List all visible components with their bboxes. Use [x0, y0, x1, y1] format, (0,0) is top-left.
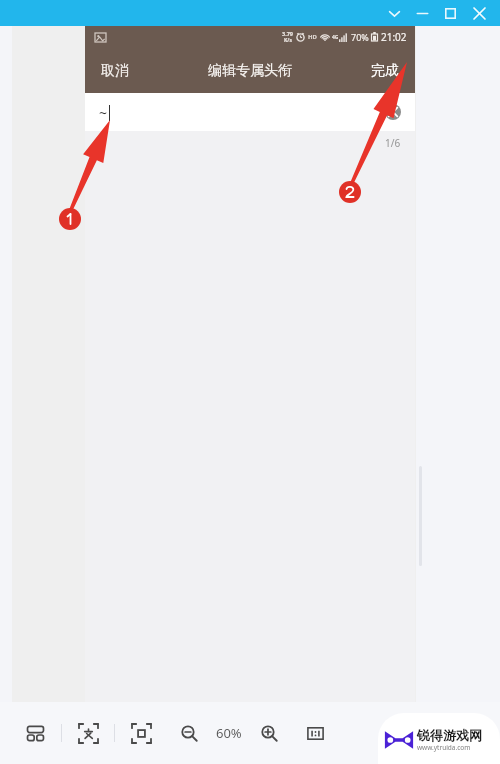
button[interactable]: Collapse: [380, 1, 408, 25]
button[interactable]: Actual size: [298, 716, 332, 750]
button[interactable]: 取消: [93, 56, 137, 86]
button[interactable]: Minimize: [408, 1, 436, 25]
staticText: 取消: [101, 62, 129, 80]
button[interactable]: 完成: [363, 56, 407, 86]
button[interactable]: Zoom in: [252, 716, 286, 750]
button[interactable]: Clear text: [381, 100, 405, 124]
staticText: HD: [308, 33, 317, 41]
staticText: 21:02: [381, 30, 407, 44]
staticText: 锐得游戏网: [417, 727, 482, 743]
button[interactable]: Watermark: [378, 713, 500, 764]
staticText: 3.79: [282, 30, 293, 37]
staticText: 70%: [351, 31, 369, 43]
button[interactable]: Maximize: [436, 1, 464, 25]
button[interactable]: ~: [85, 93, 415, 131]
staticText: 4G: [332, 34, 339, 41]
button[interactable]: Text recognition: [71, 716, 105, 750]
staticText: 编辑专属头衔: [208, 62, 292, 80]
staticText: 60%: [216, 724, 242, 742]
button[interactable]: Zoom out: [172, 716, 206, 750]
staticText: 1/6: [385, 136, 401, 150]
button[interactable]: Close: [464, 1, 494, 25]
staticText: K/s: [284, 37, 292, 44]
button[interactable]: Fit to screen: [124, 716, 158, 750]
button[interactable]: Layouts: [18, 716, 52, 750]
staticText: www.ytruida.com: [417, 743, 471, 752]
staticText: ~: [99, 103, 108, 122]
staticText: 完成: [371, 62, 399, 80]
